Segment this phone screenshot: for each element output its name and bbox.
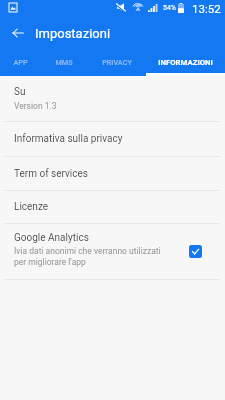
staticText: 54%: [163, 4, 176, 12]
button[interactable]: INFORMAZIONI: [146, 48, 225, 76]
staticText: 13:52: [192, 2, 221, 15]
staticText: PRIVACY: [102, 58, 132, 67]
staticText: Informativa sulla privacy: [14, 133, 123, 145]
staticText: INFORMAZIONI: [158, 58, 213, 67]
button[interactable]: Back: [7, 22, 29, 44]
button[interactable]: Term of services: [0, 157, 225, 190]
staticText: Version 1.3: [14, 101, 57, 111]
staticText: Su: [14, 86, 26, 98]
button[interactable]: Licenze: [0, 191, 225, 223]
staticText: APP: [13, 58, 28, 67]
staticText: Impostazioni: [35, 26, 111, 41]
button[interactable]: MMS: [41, 48, 87, 76]
staticText: Ivia dati anonimi che verranno utilizzat…: [14, 246, 166, 267]
button[interactable]: PRIVACY: [87, 48, 146, 76]
staticText: MMS: [55, 58, 73, 67]
staticText: Term of services: [14, 168, 88, 180]
button[interactable]: Informativa sulla privacy: [0, 122, 225, 156]
button[interactable]: Google Analytics: [0, 224, 225, 279]
button[interactable]: Su: [0, 76, 225, 121]
staticText: Google Analytics: [14, 232, 89, 244]
button[interactable]: APP: [0, 48, 41, 76]
staticText: Licenze: [14, 201, 49, 213]
